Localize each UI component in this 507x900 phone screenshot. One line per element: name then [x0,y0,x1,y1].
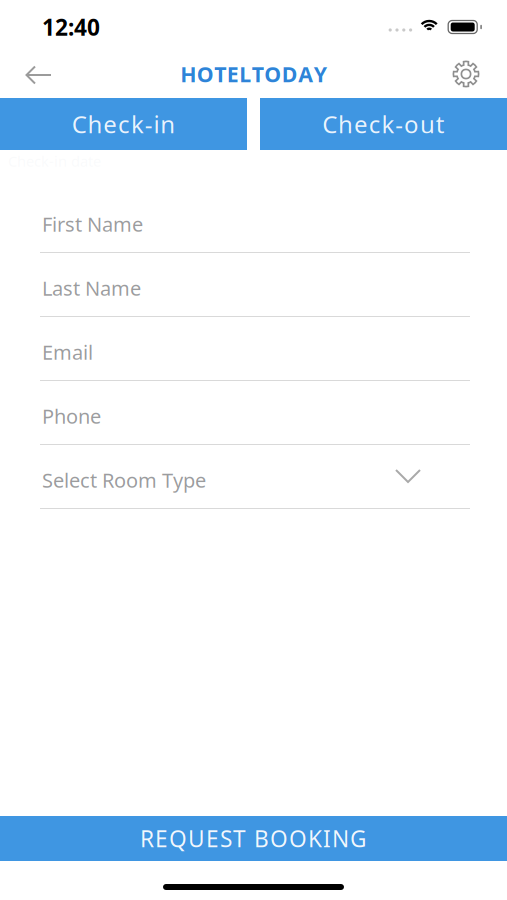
staticText: B [254,823,269,853]
staticText: First Name [42,211,143,237]
staticText: - [145,108,153,140]
button[interactable]: Request Booking [0,816,507,861]
button[interactable]: Check-in [0,98,247,150]
staticText: G [350,823,367,853]
button[interactable]: Settings [451,51,507,97]
staticText: T [252,60,264,88]
staticText: O [264,60,281,88]
button[interactable]: Select Room Type [0,452,507,509]
staticText: K [308,823,322,853]
button[interactable]: Back [0,53,51,95]
staticText: Last Name [42,275,141,301]
staticText: D [282,60,298,88]
staticText: L [239,60,251,88]
staticText: C [72,108,87,140]
staticText: A [298,60,313,88]
staticText: e [354,108,368,140]
button[interactable]: Last Name [0,260,507,317]
staticText: Select Room Type [42,467,206,493]
staticText: c [118,108,130,140]
staticText: O [270,823,288,853]
staticText: o [404,108,419,140]
staticText: Y [314,60,327,88]
button[interactable]: First Name [0,196,507,253]
staticText: S [220,823,232,853]
staticText: H [180,60,196,88]
staticText: t [436,108,445,140]
staticText: O [289,823,307,853]
staticText: T [214,60,226,88]
staticText: Email [42,339,93,365]
button[interactable]: Phone [0,388,507,445]
staticText: N [332,823,349,853]
staticText: O [197,60,214,88]
staticText: i [153,108,159,140]
staticText: Q [169,823,187,853]
staticText: R [140,823,154,853]
staticText: h [87,108,102,140]
staticText: Phone [42,403,101,429]
staticText: E [155,823,168,853]
staticText: T [233,823,246,853]
staticText: n [160,108,175,140]
staticText: 12:40 [42,12,100,42]
staticText: E [206,823,219,853]
staticText: C [322,108,337,140]
staticText: k [131,108,144,140]
staticText: e [103,108,117,140]
button[interactable]: Email [0,324,507,381]
staticText: U [188,823,205,853]
staticText: k [381,108,394,140]
button[interactable]: Check-out [260,98,507,150]
staticText: I [323,823,331,853]
staticText: - [395,108,403,140]
staticText: c [369,108,381,140]
staticText: h [338,108,353,140]
staticText: E [227,60,239,88]
staticText: u [420,108,435,140]
